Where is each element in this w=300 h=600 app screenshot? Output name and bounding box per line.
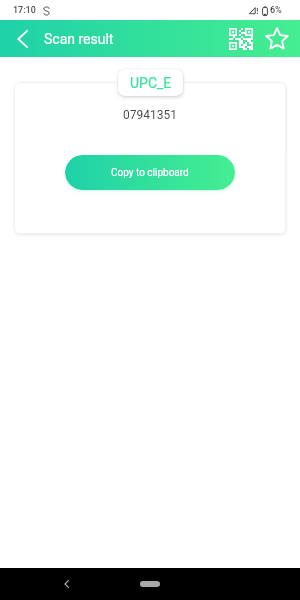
button[interactable]: Back	[55, 573, 77, 595]
staticText: 07941351	[123, 108, 177, 122]
button[interactable]: Back	[4, 20, 41, 57]
staticText: 17:10	[13, 5, 36, 16]
button[interactable]: Copy to clipboard	[65, 155, 235, 190]
button[interactable]: UPC_E	[118, 69, 183, 96]
staticText: UPC_E	[130, 75, 172, 91]
button[interactable]: Add to favorites	[258, 20, 295, 57]
button[interactable]: Home	[140, 581, 160, 587]
staticText: Scan result	[44, 31, 114, 47]
button[interactable]: Show QR code	[223, 20, 258, 57]
staticText: 6%	[270, 5, 282, 16]
staticText: Copy to clipboard	[111, 167, 189, 179]
